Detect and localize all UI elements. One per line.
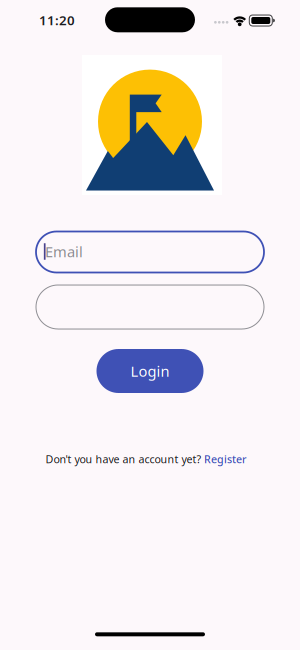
staticText: Email [45,242,83,261]
staticText: Login [130,361,169,381]
staticText: Register [204,452,247,466]
button[interactable]: Login [96,349,203,393]
staticText: 11:20 [39,11,75,29]
button[interactable]: Email [36,231,264,272]
button[interactable]: Register [202,450,249,468]
staticText: Don't you have an account yet? [45,452,201,466]
button[interactable]: Password [36,285,264,329]
